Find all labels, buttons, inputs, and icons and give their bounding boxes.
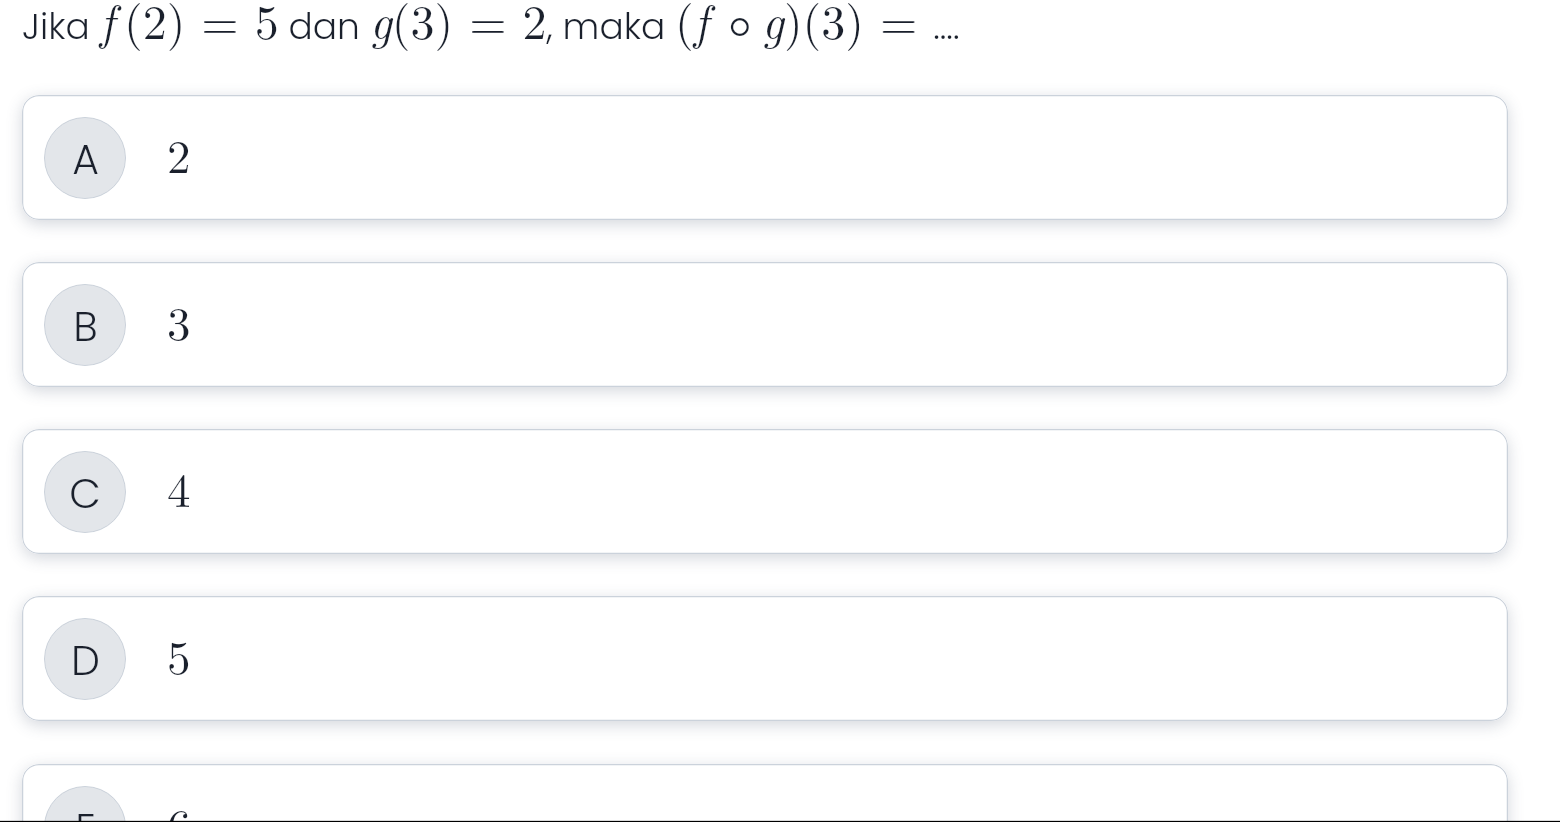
- staticText: 2: [167, 120, 191, 187]
- staticText: D: [71, 632, 100, 689]
- staticText: B: [73, 298, 98, 355]
- button[interactable]: D: [22, 596, 1508, 721]
- staticText: 6: [167, 789, 191, 822]
- button[interactable]: A: [22, 95, 1508, 220]
- staticText: 4: [167, 454, 191, 521]
- button[interactable]: C: [22, 429, 1508, 554]
- staticText: 3: [167, 287, 191, 354]
- staticText: 5: [167, 621, 191, 688]
- staticText: A: [72, 131, 99, 188]
- button[interactable]: E: [22, 764, 1508, 822]
- staticText: E: [75, 800, 96, 822]
- button[interactable]: B: [22, 262, 1508, 387]
- staticText: C: [69, 465, 101, 522]
- staticText: Jika f (2) = 5 dan g(3) = 2, maka (f ∘ g…: [22, 0, 960, 54]
